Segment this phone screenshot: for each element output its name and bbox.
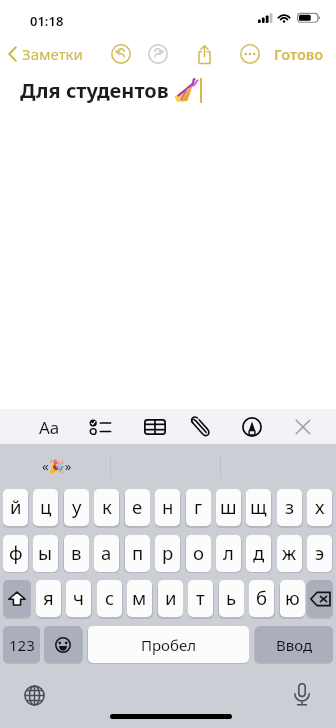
staticText: Ввод: [276, 635, 313, 655]
staticText: Готово: [274, 44, 324, 64]
button[interactable]: й: [3, 489, 28, 526]
button[interactable]: Эмодзи: [44, 626, 82, 663]
button[interactable]: Поделиться: [192, 42, 217, 66]
staticText: ь: [226, 585, 237, 610]
button[interactable]: Удалить: [307, 580, 333, 617]
staticText: г: [194, 494, 203, 519]
button[interactable]: б: [249, 580, 274, 617]
button[interactable]: 123: [3, 626, 40, 663]
staticText: д: [253, 540, 265, 565]
button[interactable]: «🎉»: [36, 455, 78, 477]
button[interactable]: ь: [219, 580, 244, 617]
button[interactable]: Готово: [270, 40, 328, 68]
button[interactable]: т: [188, 580, 213, 617]
staticText: э: [315, 540, 325, 565]
staticText: «🎉»: [42, 457, 72, 475]
button[interactable]: с: [97, 580, 122, 617]
staticText: а: [101, 540, 112, 565]
button[interactable]: Вложение: [184, 410, 218, 444]
staticText: ш: [220, 494, 237, 519]
staticText: т: [196, 585, 205, 610]
staticText: з: [285, 494, 295, 519]
button[interactable]: ю: [280, 580, 305, 617]
button[interactable]: Пробел: [88, 626, 249, 663]
staticText: б: [256, 585, 268, 610]
button[interactable]: к: [94, 489, 119, 526]
staticText: ы: [38, 540, 53, 565]
staticText: ф: [9, 540, 23, 565]
button[interactable]: а: [94, 535, 119, 572]
staticText: Заметки: [22, 44, 83, 64]
button[interactable]: э: [307, 535, 332, 572]
button[interactable]: е: [125, 489, 150, 526]
staticText: в: [71, 540, 82, 565]
staticText: х: [315, 494, 325, 519]
staticText: о: [193, 540, 204, 565]
staticText: Аа: [39, 416, 60, 439]
button[interactable]: г: [186, 489, 211, 526]
button[interactable]: у: [64, 489, 89, 526]
button[interactable]: п: [125, 535, 150, 572]
staticText: ю: [285, 585, 300, 610]
staticText: 123: [9, 635, 35, 655]
staticText: е: [132, 494, 143, 519]
staticText: 01:18: [30, 12, 64, 30]
button[interactable]: и: [158, 580, 183, 617]
button[interactable]: в: [64, 535, 89, 572]
staticText: ч: [73, 585, 84, 610]
button[interactable]: х: [307, 489, 332, 526]
staticText: ц: [40, 494, 52, 519]
button[interactable]: Таблица: [138, 410, 172, 444]
button[interactable]: р: [155, 535, 180, 572]
button[interactable]: ж: [277, 535, 302, 572]
button[interactable]: Ещё: [240, 44, 260, 64]
button[interactable]: Стиль текста: [32, 410, 66, 444]
staticText: и: [165, 585, 177, 610]
button[interactable]: Скрыть клавиатуру: [286, 410, 320, 444]
staticText: я: [43, 585, 54, 610]
staticText: р: [162, 540, 174, 565]
staticText: й: [10, 494, 22, 519]
button[interactable]: Контрольный список: [83, 410, 117, 444]
button[interactable]: щ: [246, 489, 271, 526]
staticText: Пробел: [141, 635, 197, 655]
button[interactable]: л: [216, 535, 241, 572]
button[interactable]: Повторить: [148, 44, 168, 64]
button[interactable]: ф: [3, 535, 28, 572]
button[interactable]: Сменить язык: [20, 681, 49, 710]
button[interactable]: Отменить: [111, 44, 131, 64]
button[interactable]: ш: [216, 489, 241, 526]
staticText: щ: [250, 494, 267, 519]
button[interactable]: я: [36, 580, 61, 617]
staticText: к: [102, 494, 112, 519]
button[interactable]: д: [246, 535, 271, 572]
button[interactable]: з: [277, 489, 302, 526]
button[interactable]: Верхний регистр: [3, 580, 31, 617]
button[interactable]: Разметка: [235, 410, 269, 444]
button[interactable]: м: [127, 580, 152, 617]
staticText: л: [223, 540, 234, 565]
button[interactable]: Диктовка: [287, 680, 316, 709]
button[interactable]: н: [155, 489, 180, 526]
staticText: н: [162, 494, 174, 519]
button[interactable]: о: [186, 535, 211, 572]
staticText: п: [132, 540, 144, 565]
staticText: м: [132, 585, 147, 610]
staticText: Для студентов: [20, 77, 169, 104]
button[interactable]: Ввод: [255, 626, 333, 663]
button[interactable]: ц: [33, 489, 58, 526]
staticText: ж: [282, 540, 297, 565]
staticText: у: [72, 494, 82, 519]
button[interactable]: ы: [33, 535, 58, 572]
staticText: с: [105, 585, 115, 610]
button[interactable]: ч: [66, 580, 91, 617]
button[interactable]: Заметки: [5, 40, 86, 68]
